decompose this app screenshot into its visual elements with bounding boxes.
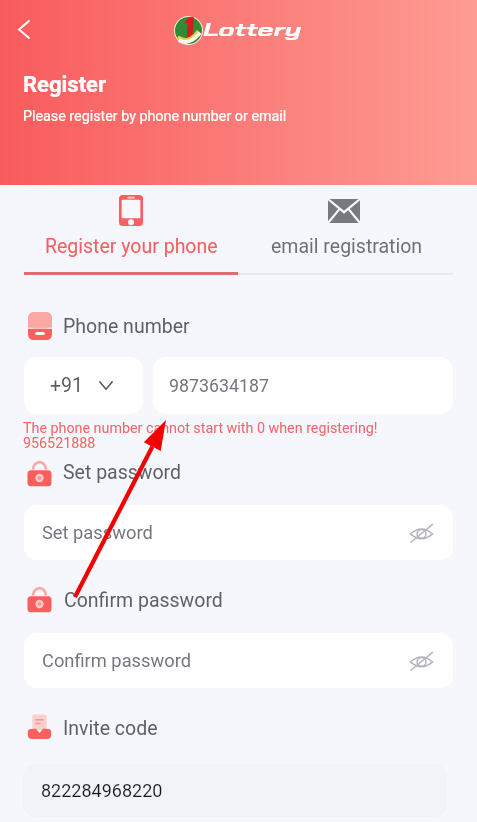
staticText: Set password	[42, 522, 153, 543]
staticText: 822284968220	[41, 780, 163, 801]
staticText: Set password	[63, 461, 182, 484]
staticText: 9873634187	[169, 375, 270, 396]
staticText: Register your phone	[45, 235, 218, 258]
button[interactable]: Show password	[405, 645, 437, 677]
staticText: Invite code	[63, 717, 158, 740]
button[interactable]: email registration	[238, 185, 453, 275]
staticText: Confirm password	[42, 650, 192, 671]
button[interactable]: Confirm password	[24, 633, 453, 688]
button[interactable]: Back	[6, 11, 42, 47]
button[interactable]: 822284968220	[23, 764, 447, 817]
staticText: The phone number cannot start with 0 whe…	[23, 420, 378, 437]
staticText: Confirm password	[64, 589, 223, 612]
button[interactable]: 9873634187	[153, 357, 453, 414]
button[interactable]: +91	[24, 357, 143, 414]
button[interactable]: Register your phone	[24, 185, 238, 275]
staticText: 956521888	[23, 435, 96, 452]
staticText: Register	[23, 72, 107, 98]
staticText: +91	[50, 374, 83, 397]
staticText: Phone number	[63, 315, 190, 338]
staticText: email registration	[271, 235, 423, 258]
staticText: Lottery	[203, 18, 302, 41]
button[interactable]: Show password	[405, 517, 437, 549]
button[interactable]: Set password	[24, 505, 453, 560]
staticText: Please register by phone number or email	[23, 108, 287, 125]
